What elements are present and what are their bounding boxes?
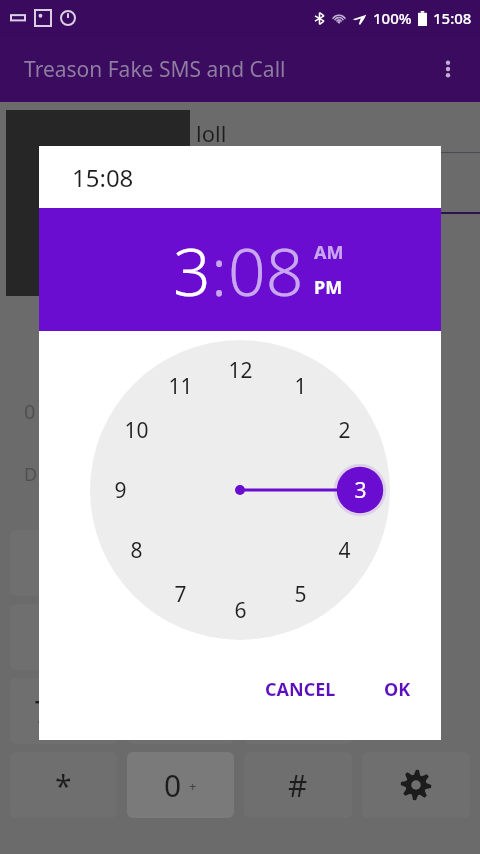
staticText: 10	[124, 416, 149, 445]
button[interactable]: OK	[372, 669, 423, 710]
staticText: loll	[196, 118, 227, 148]
button[interactable]: 3	[342, 472, 378, 508]
staticText: 12	[228, 356, 253, 385]
staticText: :	[211, 225, 228, 315]
staticText: 7	[34, 691, 52, 732]
staticText: D	[24, 462, 38, 487]
button[interactable]: 8	[118, 532, 154, 568]
staticText: 5	[294, 580, 307, 609]
staticText: #	[288, 765, 308, 806]
staticText: 1	[294, 372, 307, 401]
staticText: 6	[234, 596, 247, 625]
button[interactable]: 7	[162, 576, 198, 612]
staticText: 3	[354, 476, 367, 505]
staticText: PM	[314, 275, 343, 300]
button[interactable]: Settings	[362, 752, 470, 818]
button[interactable]: 6	[222, 592, 258, 628]
staticText: +	[189, 777, 197, 795]
button[interactable]: 7	[10, 678, 117, 744]
staticText: JKL	[184, 629, 203, 647]
staticText: 6	[270, 617, 288, 658]
staticText: 11	[168, 372, 193, 401]
button[interactable]: 2	[127, 530, 234, 596]
button[interactable]: 1	[282, 368, 318, 404]
staticText: 8	[130, 536, 143, 565]
staticText: OK	[384, 677, 411, 702]
button[interactable]: 11	[162, 368, 198, 404]
staticText: *	[55, 765, 72, 806]
staticText: CANCEL	[265, 677, 336, 702]
button[interactable]: 12	[222, 352, 258, 388]
button[interactable]: 5	[282, 576, 318, 612]
button[interactable]: *	[10, 752, 117, 818]
staticText: 2	[338, 416, 351, 445]
button[interactable]: PM	[314, 275, 343, 300]
button[interactable]: 3	[173, 225, 211, 315]
button[interactable]: 8	[127, 678, 234, 744]
staticText: 08	[228, 225, 304, 315]
button[interactable]: 4	[10, 604, 117, 670]
button[interactable]: CANCEL	[253, 669, 348, 710]
button[interactable]: 2	[326, 412, 362, 448]
staticText: 0	[164, 765, 182, 806]
button[interactable]: 6	[244, 604, 352, 670]
staticText: 9	[268, 691, 286, 732]
button[interactable]: 0	[127, 752, 234, 818]
button[interactable]: More options	[426, 47, 470, 91]
staticText: 9	[114, 476, 127, 505]
button[interactable]: 9	[244, 678, 352, 744]
staticText: 100%	[373, 8, 412, 28]
staticText: 4	[338, 536, 351, 565]
button[interactable]: 9	[102, 472, 138, 508]
staticText: Treason Fake SMS and Call	[24, 55, 286, 84]
staticText: 0	[24, 398, 36, 425]
button[interactable]: 4	[326, 532, 362, 568]
button[interactable]: 1	[10, 530, 117, 596]
staticText: 7	[174, 580, 187, 609]
button[interactable]: 5	[127, 604, 234, 670]
staticText: 5	[159, 617, 177, 658]
button[interactable]: 10	[118, 412, 154, 448]
button[interactable]: #	[244, 752, 352, 818]
staticText: 3	[173, 225, 211, 315]
button[interactable]: 08	[228, 225, 304, 315]
button[interactable]: 3	[244, 530, 352, 596]
button[interactable]: AM	[314, 240, 344, 265]
staticText: AM	[314, 240, 344, 265]
staticText: 15:08	[433, 8, 472, 28]
staticText: 15:08	[72, 161, 134, 194]
